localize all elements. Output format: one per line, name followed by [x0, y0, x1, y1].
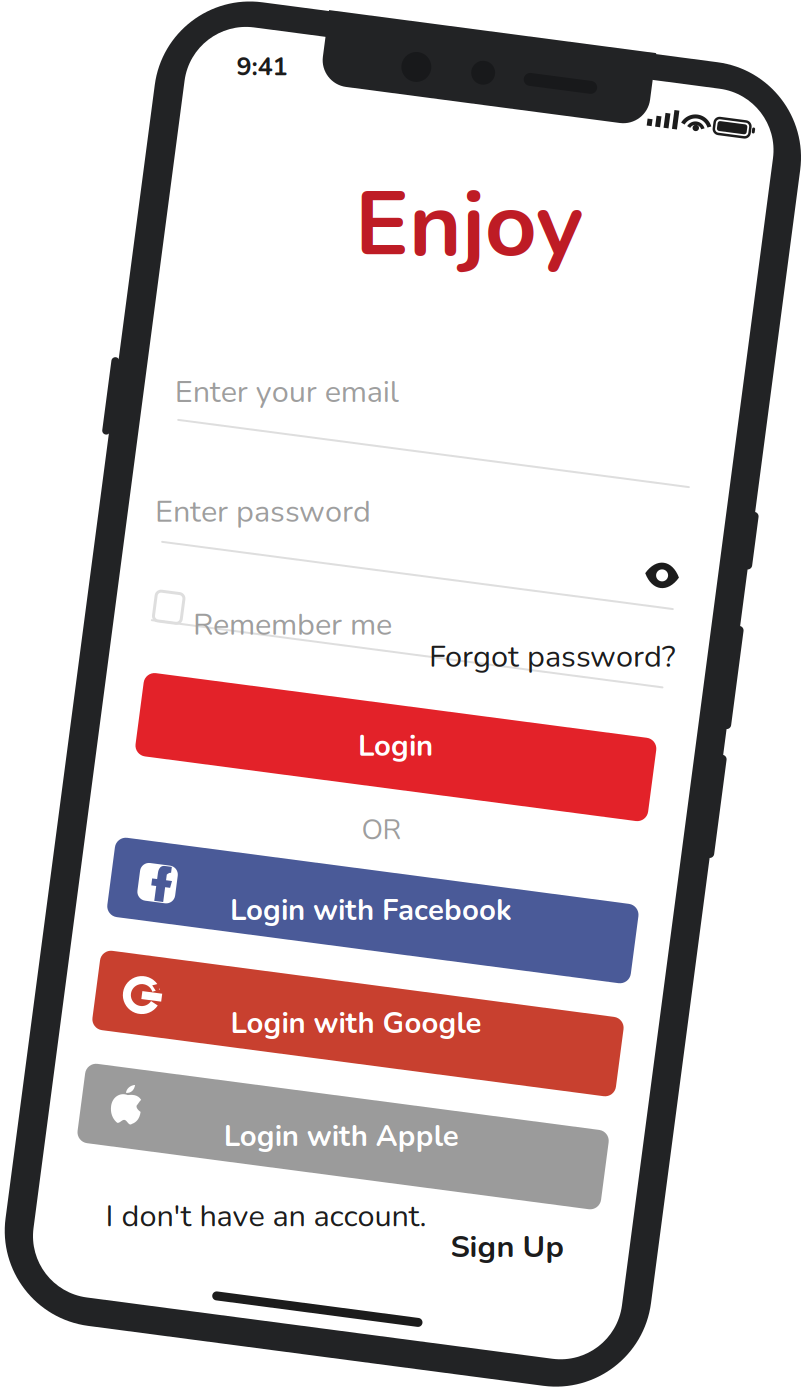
button[interactable]: Login with Facebook — [0, 0, 803, 1388]
staticText: Enjoy — [355, 163, 584, 287]
staticText: Enter password — [155, 491, 371, 533]
staticText: Remember me — [193, 604, 392, 645]
staticText: Enter your email — [175, 371, 399, 413]
staticText: Sign Up — [451, 1226, 564, 1268]
button[interactable]: Show password — [0, 0, 803, 1388]
staticText: I don't have an account. — [106, 1195, 427, 1237]
staticText: Forgot password? — [429, 636, 676, 678]
staticText: Login with Facebook — [230, 890, 512, 930]
button[interactable]: Login with Apple — [0, 0, 803, 1388]
button[interactable]: Login with Google — [0, 0, 803, 1388]
button[interactable]: Remember me — [0, 0, 803, 1388]
staticText: OR — [361, 811, 401, 849]
button[interactable]: Forgot password? — [278, 673, 525, 715]
staticText: Login with Apple — [224, 1116, 459, 1156]
staticText: Login with Google — [230, 1003, 481, 1043]
button[interactable]: Sign Up — [345, 673, 458, 715]
staticText: 9:41 — [236, 49, 287, 84]
staticText: Login — [358, 726, 433, 766]
button[interactable]: Login — [0, 0, 803, 1388]
